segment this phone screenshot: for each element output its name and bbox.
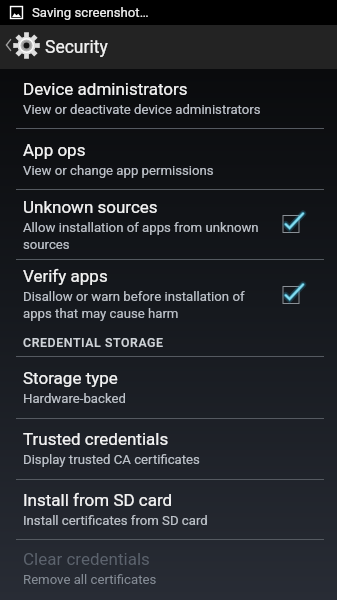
staticText: Remove all certificates	[23, 572, 157, 587]
staticText: Hardware-backed	[23, 391, 126, 406]
button[interactable]: Toggle setting	[275, 208, 307, 240]
staticText: Display trusted CA certificates	[23, 452, 200, 467]
button[interactable]: Toggle setting	[275, 279, 307, 311]
staticText: View or change app permissions	[23, 163, 214, 178]
button[interactable]: Storage type	[0, 357, 337, 418]
staticText: Disallow or warn before installation of …	[23, 289, 263, 321]
staticText: Allow installation of apps from unknown …	[23, 220, 263, 252]
staticText: View or deactivate device administrators	[23, 102, 261, 117]
staticText: Verify apps	[23, 266, 108, 286]
button[interactable]: Verify apps	[0, 260, 337, 331]
staticText: Unknown sources	[23, 197, 158, 217]
staticText: Storage type	[23, 368, 118, 388]
staticText: Trusted credentials	[23, 429, 169, 449]
staticText: CREDENTIAL STORAGE	[23, 336, 164, 350]
button[interactable]: Trusted credentials	[0, 419, 337, 479]
button[interactable]: Install from SD card	[0, 480, 337, 539]
button[interactable]: Unknown sources	[0, 190, 337, 259]
staticText: Install certificates from SD card	[23, 513, 208, 528]
button[interactable]: Navigate up	[0, 25, 45, 69]
staticText: Saving screenshot…	[32, 5, 149, 20]
staticText: Clear credentials	[23, 549, 150, 569]
staticText: Security	[45, 37, 108, 58]
button[interactable]: Clear credentials	[0, 540, 337, 600]
staticText: Install from SD card	[23, 490, 173, 510]
button[interactable]: App ops	[0, 129, 337, 189]
button[interactable]: Device administrators	[0, 69, 337, 128]
staticText: App ops	[23, 140, 86, 160]
staticText: Device administrators	[23, 79, 188, 99]
